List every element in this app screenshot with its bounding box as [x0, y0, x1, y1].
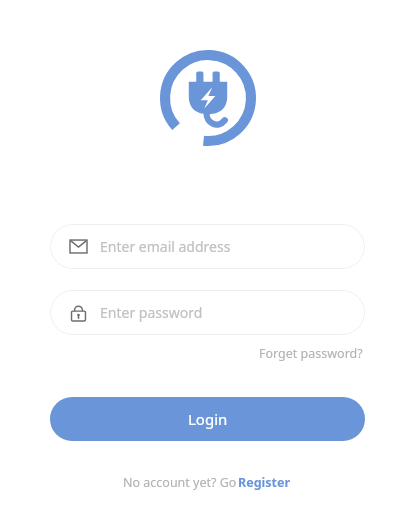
button[interactable]: Login — [50, 397, 365, 441]
button[interactable]: Forget password? — [257, 342, 365, 365]
button[interactable]: Register — [237, 471, 292, 494]
staticText: Enter email address — [100, 237, 231, 256]
button[interactable]: Enter email address — [50, 224, 365, 269]
staticText: No account yet? Go — [123, 474, 237, 491]
button[interactable]: Enter password — [50, 290, 365, 335]
staticText: Enter password — [100, 303, 203, 322]
staticText: Login — [188, 409, 228, 429]
